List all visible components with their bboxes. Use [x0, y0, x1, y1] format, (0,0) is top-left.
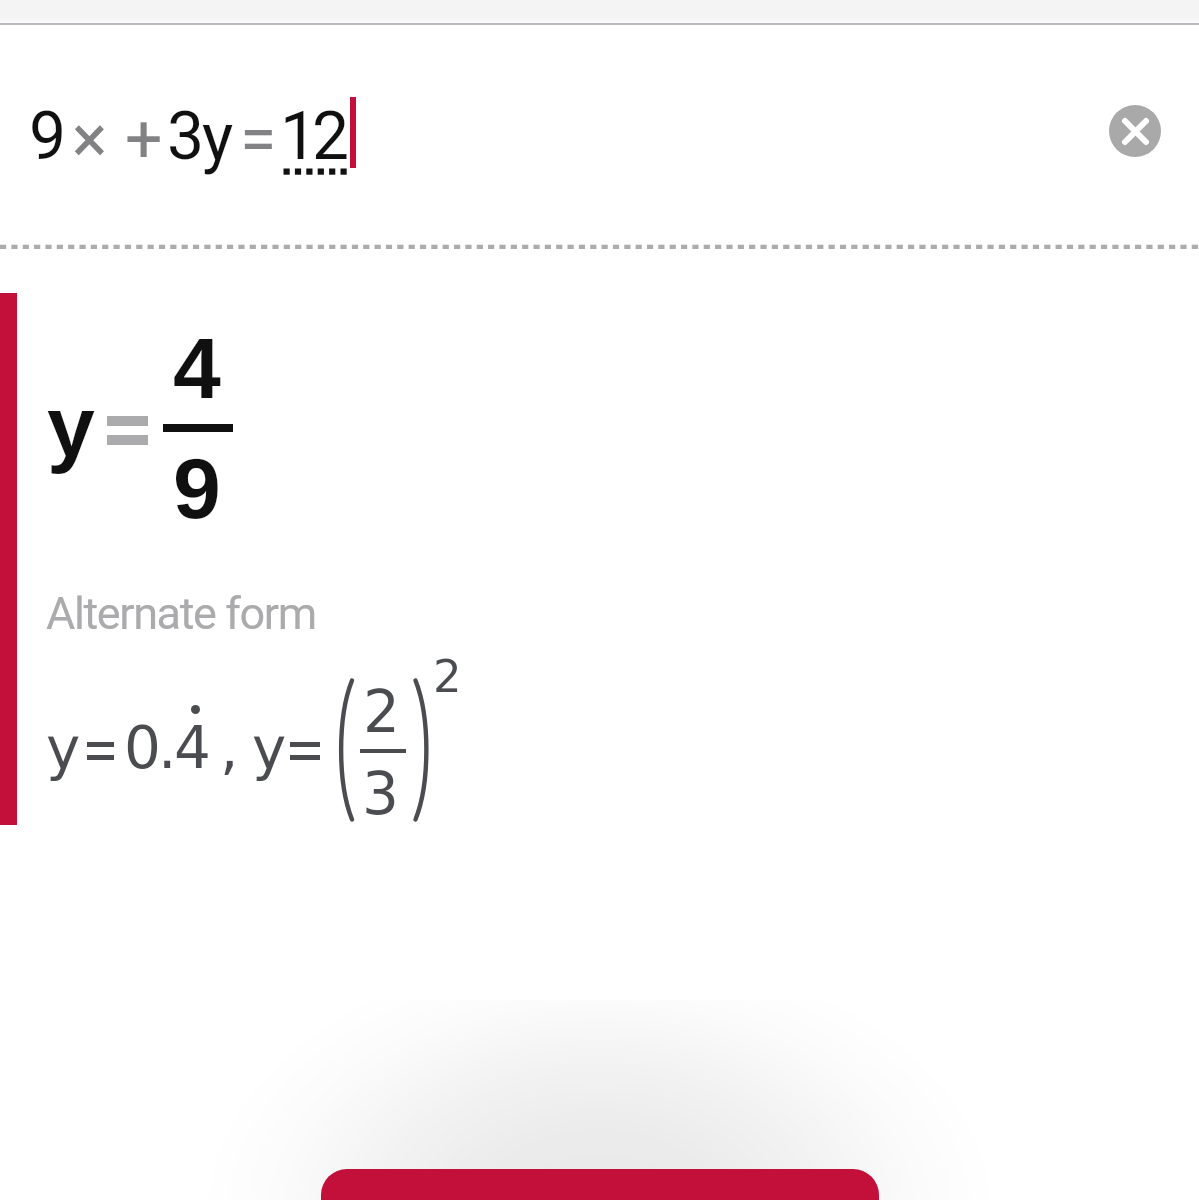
staticText: 3	[362, 760, 399, 828]
button[interactable]: Equation input: 9x + 3y = 12	[0, 26, 1199, 243]
staticText: =	[240, 101, 277, 178]
staticText: y	[202, 99, 234, 176]
staticText: 1	[280, 98, 318, 175]
staticText: +	[125, 101, 163, 178]
staticText: 2	[433, 650, 462, 702]
staticText: 9	[29, 98, 67, 175]
button[interactable]: Solution card: y = 4/9	[0, 293, 1199, 825]
staticText: .	[158, 714, 177, 782]
staticText: y	[252, 715, 287, 783]
staticText: 4	[174, 714, 211, 782]
staticText: ×	[72, 101, 108, 178]
staticText: 2	[312, 98, 350, 175]
staticText: y	[47, 378, 95, 474]
staticText: 0	[124, 714, 161, 782]
staticText: Alternate form	[46, 587, 316, 640]
staticText: 2	[363, 678, 400, 746]
button[interactable]: Clear equation	[1109, 105, 1161, 157]
staticText: y	[46, 715, 81, 783]
staticText: 9	[173, 440, 221, 536]
staticText: ,	[220, 714, 239, 782]
staticText: 3	[167, 98, 205, 175]
staticText: 4	[173, 320, 221, 416]
button[interactable]: Solve	[321, 1169, 879, 1200]
